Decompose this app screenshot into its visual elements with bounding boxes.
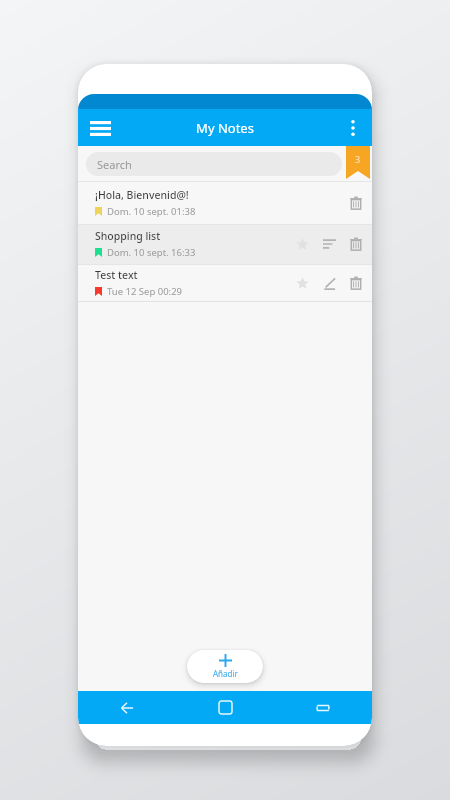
button[interactable]: Shopping list: [78, 224, 372, 264]
staticText: Shopping list: [95, 229, 161, 243]
button[interactable]: Open navigation menu: [83, 111, 117, 145]
button[interactable]: Añadir: [187, 650, 263, 683]
button[interactable]: Edit note: [318, 272, 340, 294]
button[interactable]: Back: [78, 691, 176, 724]
button[interactable]: Delete note: [345, 233, 367, 255]
button[interactable]: Delete note: [345, 192, 367, 214]
button[interactable]: Test text: [78, 264, 372, 301]
button[interactable]: Search: [86, 152, 342, 176]
button[interactable]: Favorite: [291, 233, 313, 255]
button[interactable]: Delete note: [345, 272, 367, 294]
button[interactable]: Favorite: [291, 272, 313, 294]
staticText: Test text: [95, 268, 138, 282]
button[interactable]: Recent apps: [274, 691, 372, 724]
staticText: ¡Hola, Bienvenid@!: [95, 188, 189, 202]
button[interactable]: Home: [176, 691, 274, 724]
button[interactable]: Checklist: [318, 233, 340, 255]
button[interactable]: Notes count 3: [346, 146, 370, 179]
staticText: Añadir: [213, 668, 238, 679]
staticText: Tue 12 Sep 00:29: [107, 285, 183, 298]
staticText: 3: [355, 153, 361, 165]
button[interactable]: ¡Hola, Bienvenid@!: [78, 181, 372, 224]
staticText: Dom. 10 sept. 16:33: [107, 246, 196, 259]
staticText: Dom. 10 sept. 01:38: [107, 205, 196, 218]
staticText: Search: [97, 157, 132, 172]
staticText: My Notes: [196, 119, 254, 137]
button[interactable]: More options: [338, 113, 368, 143]
